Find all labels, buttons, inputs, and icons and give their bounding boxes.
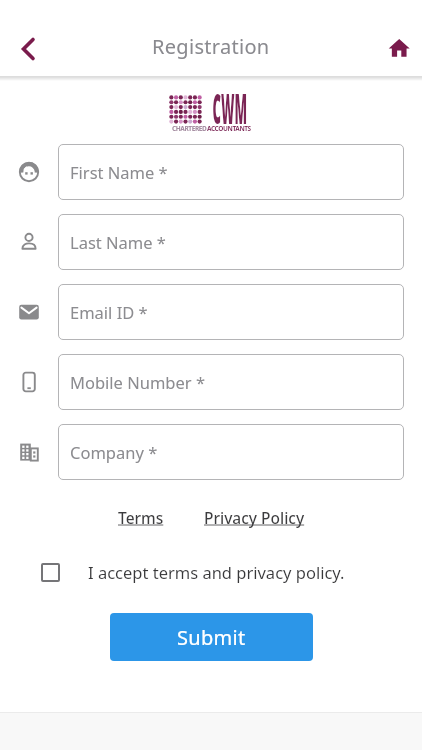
button[interactable] (12, 32, 46, 66)
staticText: I accept terms and privacy policy. (88, 561, 345, 583)
staticText: Last Name * (70, 231, 166, 253)
staticText: First Name * (70, 161, 168, 183)
button[interactable]: I accept terms and privacy policy. (41, 561, 422, 583)
button[interactable]: Submit (110, 613, 313, 661)
button[interactable]: Terms (118, 507, 164, 528)
button[interactable]: Mobile Number * (58, 354, 404, 410)
staticText: CHARTERED (172, 124, 207, 133)
staticText: Registration (152, 33, 270, 60)
button[interactable]: Privacy Policy (204, 507, 305, 528)
staticText: Company * (70, 441, 158, 463)
staticText: CWM (212, 79, 247, 135)
button[interactable]: First Name * (58, 144, 404, 200)
staticText: Submit (177, 624, 246, 651)
button[interactable]: Company * (58, 424, 404, 480)
staticText: Email ID * (70, 301, 148, 323)
staticText: ACCOUNTANTS (207, 124, 251, 133)
button[interactable]: Last Name * (58, 214, 404, 270)
staticText: Mobile Number * (70, 371, 206, 393)
button[interactable] (384, 34, 414, 64)
button[interactable]: Email ID * (58, 284, 404, 340)
